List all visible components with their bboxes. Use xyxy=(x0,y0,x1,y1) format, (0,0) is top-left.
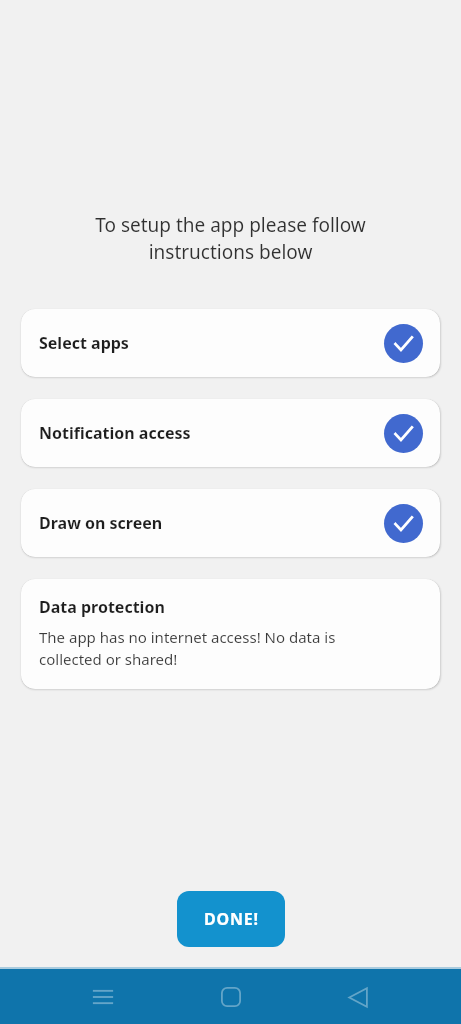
staticText: Draw on screen xyxy=(39,512,163,534)
button[interactable]: Back xyxy=(334,973,382,1021)
button[interactable]: Select apps xyxy=(21,309,440,377)
staticText: Data protection xyxy=(39,596,165,618)
other: Completed xyxy=(384,504,423,543)
staticText: The app has no internet access! No data … xyxy=(39,627,336,670)
button[interactable]: DONE! xyxy=(177,891,285,947)
other: Completed xyxy=(384,414,423,453)
staticText: To setup the app please follow instructi… xyxy=(24,212,437,265)
button[interactable]: Data protection xyxy=(21,579,440,689)
staticText: DONE! xyxy=(204,908,259,930)
button[interactable]: Notification access xyxy=(21,399,440,467)
button[interactable]: Home xyxy=(207,973,255,1021)
button[interactable]: Recent apps xyxy=(79,973,127,1021)
button[interactable]: Draw on screen xyxy=(21,489,440,557)
other: Completed xyxy=(384,324,423,363)
staticText: Notification access xyxy=(39,422,191,444)
staticText: Select apps xyxy=(39,332,129,354)
